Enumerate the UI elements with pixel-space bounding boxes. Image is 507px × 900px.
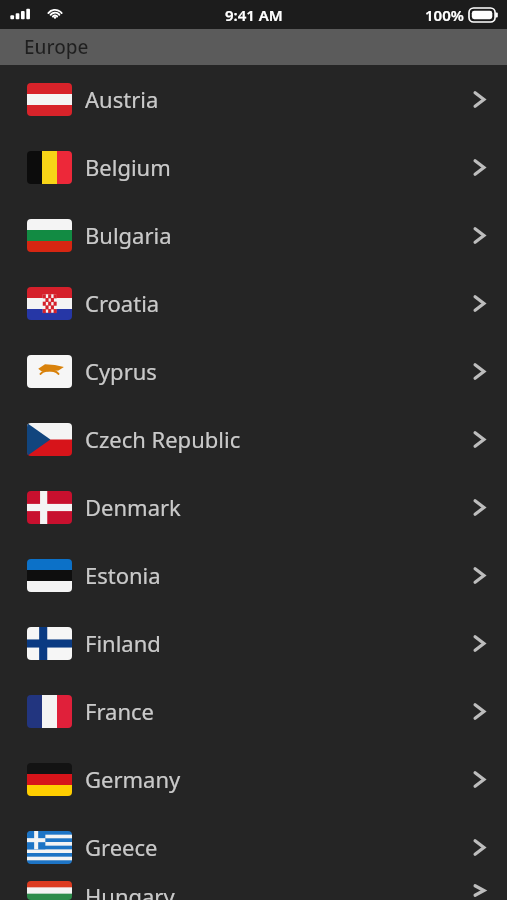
staticText: Bulgaria bbox=[85, 220, 172, 250]
staticText: Finland bbox=[85, 628, 161, 658]
other: Cellular signal bbox=[8, 0, 42, 29]
button[interactable]: Bulgaria bbox=[0, 201, 507, 269]
button[interactable]: Greece bbox=[0, 813, 507, 881]
button[interactable]: France bbox=[0, 677, 507, 745]
staticText: Estonia bbox=[85, 560, 161, 590]
staticText: Greece bbox=[85, 832, 158, 862]
button[interactable]: Denmark bbox=[0, 473, 507, 541]
button[interactable]: Finland bbox=[0, 609, 507, 677]
staticText: Denmark bbox=[85, 492, 181, 522]
staticText: Cyprus bbox=[85, 356, 157, 386]
button[interactable]: Hungary bbox=[0, 881, 507, 900]
button[interactable]: Cyprus bbox=[0, 337, 507, 405]
staticText: Austria bbox=[85, 84, 159, 114]
staticText: Belgium bbox=[85, 152, 171, 182]
button[interactable]: Austria bbox=[0, 65, 507, 133]
button[interactable]: Germany bbox=[0, 745, 507, 813]
staticText: France bbox=[85, 696, 154, 726]
staticText: Germany bbox=[85, 764, 181, 794]
staticText: Europe bbox=[24, 34, 89, 60]
button[interactable]: Belgium bbox=[0, 133, 507, 201]
staticText: Hungary bbox=[85, 881, 175, 900]
staticText: 9:41 AM bbox=[225, 5, 283, 25]
other: Battery full bbox=[469, 8, 499, 22]
staticText: Czech Republic bbox=[85, 424, 241, 454]
button[interactable]: Estonia bbox=[0, 541, 507, 609]
staticText: 100% bbox=[425, 5, 464, 25]
button[interactable]: Croatia bbox=[0, 269, 507, 337]
other: Wi-Fi bbox=[42, 0, 68, 29]
button[interactable]: Czech Republic bbox=[0, 405, 507, 473]
button[interactable]: Europe bbox=[0, 29, 507, 65]
staticText: Croatia bbox=[85, 288, 160, 318]
